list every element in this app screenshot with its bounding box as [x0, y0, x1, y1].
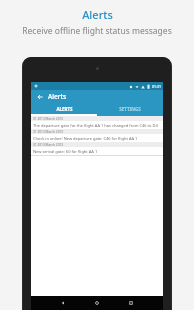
staticText: Receive offline flight status messages: [22, 25, 172, 37]
button[interactable]: ALERTS: [31, 103, 97, 114]
button[interactable]: Home: [86, 296, 108, 310]
button[interactable]: 31 2013 March 2013: [31, 129, 163, 142]
staticText: Alerts: [48, 92, 67, 101]
button[interactable]: Back: [35, 92, 44, 101]
staticText: 31 2013 March 2013: [33, 143, 64, 147]
staticText: The departure gate for the flight AA 1 h…: [33, 123, 158, 128]
staticText: New arrival gate: 60 for flight AA 1: [33, 149, 98, 154]
staticText: Alerts: [82, 7, 113, 22]
staticText: 01:31: [152, 84, 161, 89]
staticText: 31 2013 March 2013: [33, 130, 64, 134]
staticText: 31 2013 March 2013: [33, 117, 64, 121]
staticText: ALERTS: [56, 106, 73, 112]
button[interactable]: 31 2013 March 2013: [31, 142, 163, 155]
button[interactable]: Recent apps: [120, 296, 142, 310]
button[interactable]: SETTINGS: [97, 103, 163, 114]
staticText: SETTINGS: [119, 106, 141, 112]
staticText: Check in online! New departure gate: C46…: [33, 136, 138, 141]
button[interactable]: Back: [52, 296, 74, 310]
button[interactable]: 31 2013 March 2013: [31, 116, 163, 129]
